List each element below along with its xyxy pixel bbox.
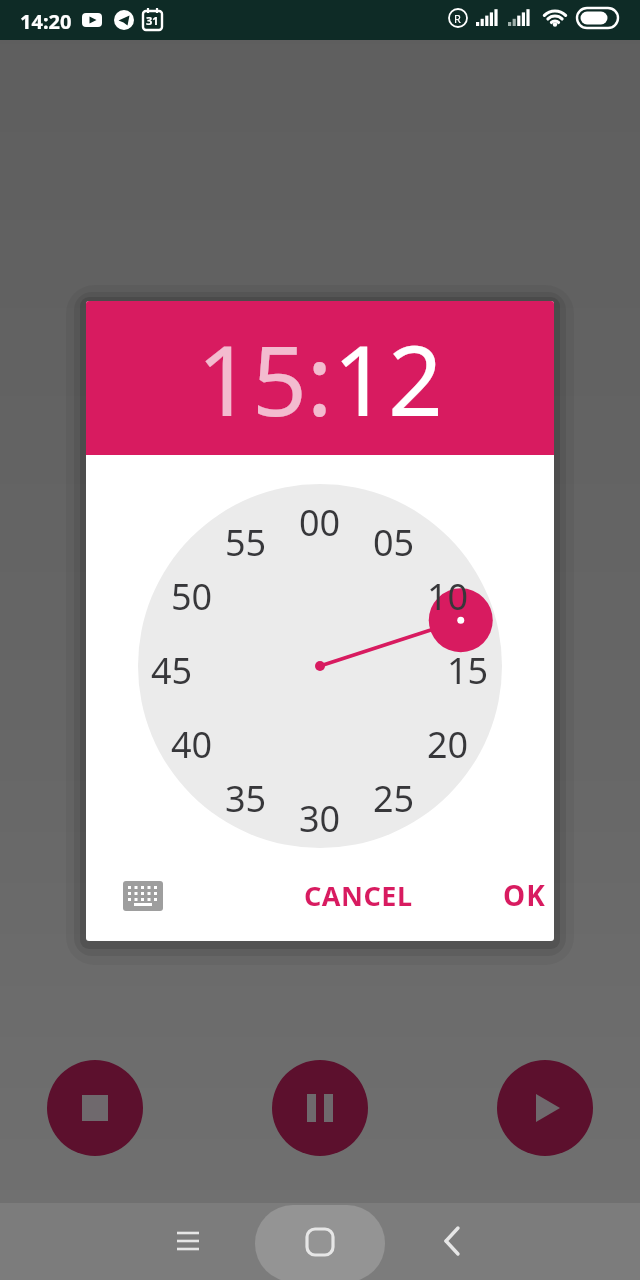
button[interactable] <box>47 1060 143 1156</box>
button[interactable] <box>272 1060 368 1156</box>
staticText: 55 <box>225 518 267 558</box>
staticText: 40 <box>171 720 213 760</box>
staticText: 30 <box>299 794 341 834</box>
staticText: OK <box>503 876 546 914</box>
staticText: 12 <box>333 313 443 444</box>
staticText: 45 <box>151 646 193 686</box>
staticText: 50 <box>171 572 213 612</box>
button[interactable] <box>164 1217 212 1265</box>
staticText: 05 <box>373 518 415 558</box>
staticText: 31 <box>146 13 159 28</box>
staticText: 00 <box>299 498 341 538</box>
button[interactable]: CANCEL <box>282 867 434 923</box>
staticText: CANCEL <box>304 877 413 914</box>
button[interactable] <box>497 1060 593 1156</box>
staticText: 20 <box>427 720 469 760</box>
staticText: 25 <box>373 774 415 814</box>
staticText: 35 <box>225 774 267 814</box>
staticText: R <box>454 11 461 26</box>
staticText: 14:20 <box>20 8 72 35</box>
staticText: 15: <box>197 313 333 444</box>
staticText: 10 <box>427 572 469 612</box>
button[interactable]: OK <box>484 867 554 923</box>
button[interactable] <box>116 873 164 917</box>
button[interactable] <box>255 1205 385 1280</box>
staticText: 15 <box>447 646 489 686</box>
button[interactable] <box>428 1217 476 1265</box>
